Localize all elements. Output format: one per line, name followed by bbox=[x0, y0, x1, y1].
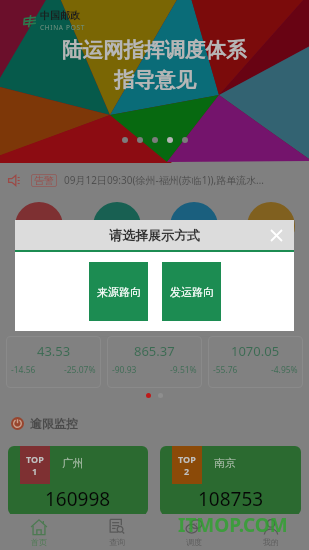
button[interactable]: 865.37 bbox=[107, 336, 202, 388]
staticText: CHINA POST bbox=[40, 23, 86, 32]
staticText: 发运路向 bbox=[170, 285, 214, 299]
staticText: 我的 bbox=[263, 537, 279, 547]
button[interactable] bbox=[93, 202, 141, 250]
staticText: 陆运网指挥调度体系 bbox=[62, 37, 247, 63]
staticText: TOP bbox=[178, 453, 196, 465]
staticText: 南京 bbox=[214, 456, 236, 470]
button[interactable]: 关闭 bbox=[266, 225, 286, 245]
staticText: 首页 bbox=[31, 537, 47, 547]
staticText: 160998 bbox=[45, 486, 111, 512]
button[interactable]: 调度 bbox=[155, 514, 232, 550]
staticText: ITMOP.COM bbox=[178, 512, 288, 538]
staticText: 09月12日09:30(徐州-福州(苏临1)),路单流水… bbox=[64, 173, 264, 187]
button[interactable]: 1070.05 bbox=[208, 336, 303, 388]
button[interactable]: 首页 bbox=[0, 514, 78, 550]
staticText: 中国邮政 bbox=[40, 9, 80, 22]
staticText: -25.07% bbox=[64, 364, 96, 376]
button[interactable]: 查询 bbox=[78, 514, 155, 550]
button[interactable]: TOP bbox=[160, 446, 301, 515]
staticText: 43.53 bbox=[37, 342, 71, 360]
button[interactable] bbox=[170, 202, 218, 250]
staticText: 108753 bbox=[198, 486, 264, 512]
staticText: -14.56 bbox=[11, 364, 36, 376]
staticText: 来源路向 bbox=[97, 285, 141, 299]
staticText: 865.37 bbox=[134, 342, 175, 360]
button[interactable] bbox=[247, 202, 295, 250]
button[interactable]: 来源路向 bbox=[89, 262, 148, 321]
button[interactable]: TOP bbox=[8, 446, 148, 515]
staticText: 查询 bbox=[109, 537, 125, 547]
staticText: -9.51% bbox=[170, 364, 197, 376]
staticText: 广州 bbox=[62, 456, 84, 470]
staticText: 2 bbox=[184, 465, 190, 477]
staticText: 请选择展示方式 bbox=[109, 227, 200, 243]
button[interactable]: 我的 bbox=[232, 514, 309, 550]
staticText: -90.93 bbox=[112, 364, 137, 376]
staticText: 调度 bbox=[186, 537, 202, 547]
staticText: 告警 bbox=[34, 174, 54, 187]
staticText: 1070.05 bbox=[231, 342, 280, 360]
staticText: -55.76 bbox=[213, 364, 238, 376]
staticText: 指导意见 bbox=[114, 67, 196, 93]
button[interactable]: 43.53 bbox=[6, 336, 101, 388]
staticText: 逾限监控 bbox=[30, 416, 78, 431]
button[interactable] bbox=[15, 202, 63, 250]
staticText: 1 bbox=[32, 465, 38, 477]
staticText: TOP bbox=[26, 453, 44, 465]
staticText: -4.95% bbox=[271, 364, 298, 376]
button[interactable]: 发运路向 bbox=[162, 262, 221, 321]
